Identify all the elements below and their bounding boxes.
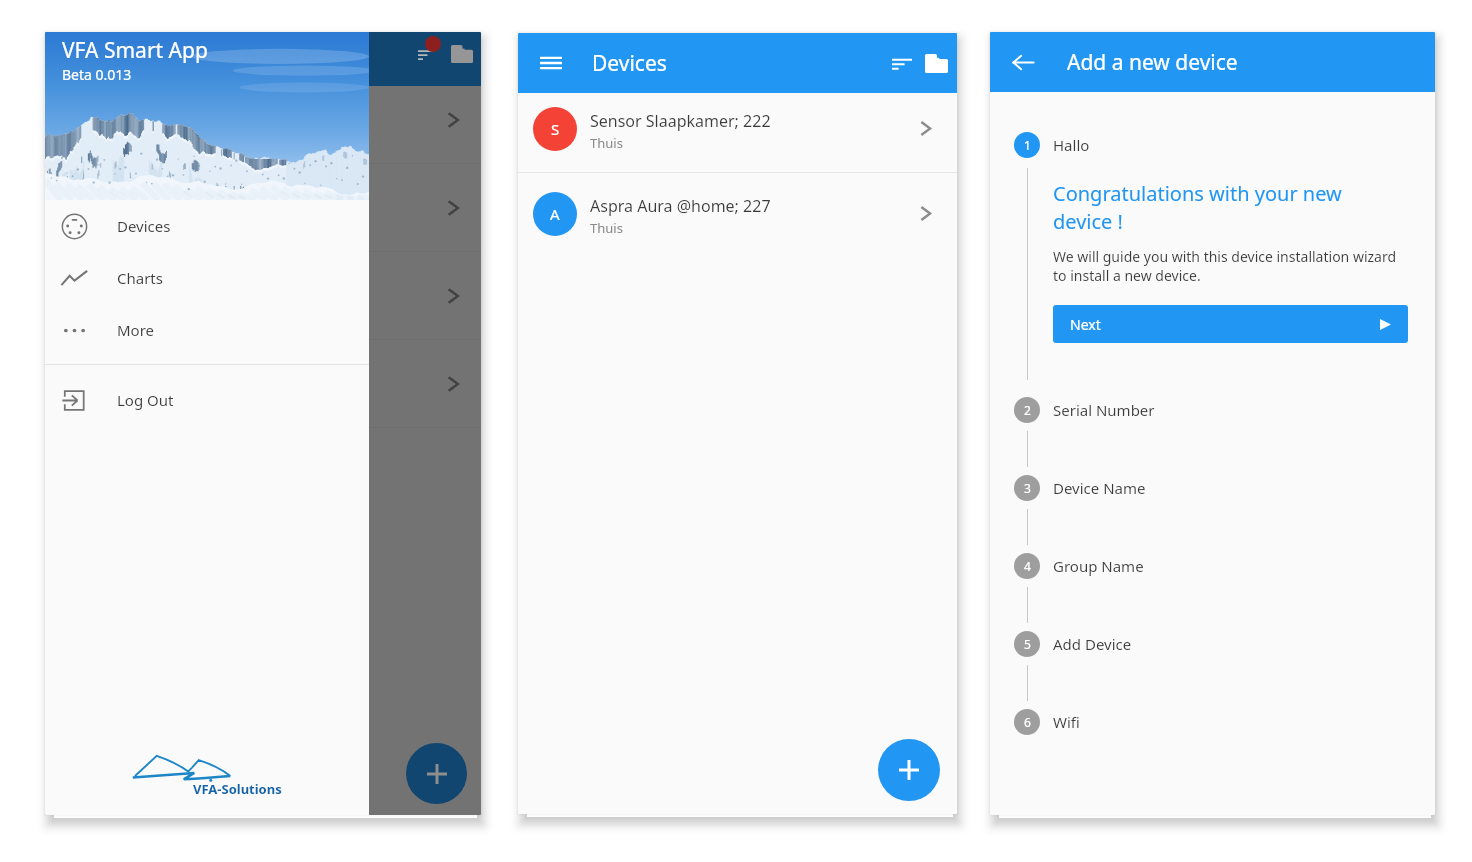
- button[interactable]: Groups: [919, 46, 953, 80]
- staticText: More: [117, 320, 155, 340]
- staticText: Group Name: [1053, 556, 1144, 576]
- staticText: Devices: [592, 49, 667, 78]
- button[interactable]: 4: [990, 553, 1435, 631]
- button[interactable]: Charts: [45, 252, 369, 304]
- staticText: Aspra Aura @home; 227: [590, 195, 771, 217]
- staticText: 1: [1024, 137, 1031, 153]
- button[interactable]: Add device: [406, 743, 467, 804]
- staticText: Add a new device: [1067, 48, 1238, 77]
- button[interactable]: More: [45, 304, 369, 356]
- button[interactable]: 2: [990, 397, 1435, 475]
- staticText: VFA Smart App: [62, 36, 208, 65]
- staticText: 3: [1024, 480, 1031, 496]
- staticText: Devices: [117, 216, 171, 236]
- button[interactable]: Open navigation drawer: [534, 46, 568, 80]
- button[interactable]: Log Out: [45, 374, 369, 426]
- button[interactable]: [45, 86, 481, 174]
- staticText: Hallo: [1053, 135, 1090, 155]
- button[interactable]: Next: [1053, 305, 1408, 343]
- staticText: 6: [1024, 714, 1031, 730]
- staticText: Device Name: [1053, 478, 1146, 498]
- button[interactable]: 6: [990, 709, 1435, 735]
- staticText: 5: [1024, 636, 1031, 652]
- button[interactable]: [45, 174, 481, 262]
- button[interactable]: S: [518, 93, 957, 172]
- staticText: We will guide you with this device insta…: [1053, 247, 1406, 285]
- button[interactable]: Back: [1006, 45, 1040, 79]
- button[interactable]: A: [518, 173, 957, 253]
- staticText: Congratulations with your new device !: [1053, 180, 1353, 235]
- staticText: Log Out: [117, 390, 174, 410]
- staticText: Sensor Slaapkamer; 222: [590, 110, 771, 132]
- button[interactable]: Devices: [45, 200, 369, 252]
- button[interactable]: [45, 262, 481, 350]
- staticText: A: [550, 204, 560, 224]
- staticText: Charts: [117, 268, 163, 288]
- button[interactable]: [45, 350, 481, 438]
- staticText: Add Device: [1053, 634, 1132, 654]
- staticText: 4: [1024, 558, 1031, 574]
- staticText: Wifi: [1053, 712, 1080, 732]
- button[interactable]: Groups: [446, 40, 478, 68]
- staticText: Beta 0.013: [62, 65, 132, 84]
- staticText: S: [551, 119, 560, 139]
- staticText: Serial Number: [1053, 400, 1155, 420]
- staticText: VFA-Solutions: [193, 780, 282, 798]
- staticText: Next: [1070, 315, 1101, 334]
- staticText: 2: [1024, 402, 1031, 418]
- staticText: Thuis: [590, 219, 623, 237]
- button[interactable]: Sort: [410, 39, 441, 70]
- button[interactable]: Sort: [885, 46, 919, 80]
- button[interactable]: 3: [990, 475, 1435, 553]
- staticText: Thuis: [590, 134, 623, 152]
- button[interactable]: 5: [990, 631, 1435, 709]
- button[interactable]: Add device: [878, 739, 940, 801]
